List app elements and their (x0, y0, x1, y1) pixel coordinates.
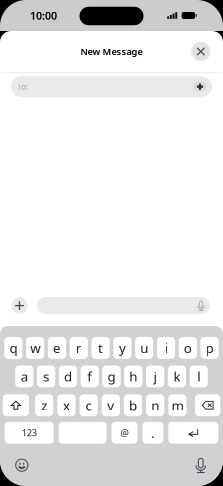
staticText: x (63, 396, 70, 414)
button[interactable]: @ (111, 422, 137, 444)
button[interactable]: Add contact (191, 78, 209, 96)
staticText: d (64, 368, 72, 385)
staticText: t (98, 339, 103, 357)
staticText: u (140, 339, 148, 357)
staticText: a (21, 368, 28, 385)
staticText: n (151, 396, 159, 414)
button[interactable]: j (146, 365, 164, 387)
button[interactable]: Dictation (188, 452, 214, 478)
button[interactable]: i (157, 337, 175, 359)
button[interactable]: . (142, 422, 163, 444)
button[interactable]: o (179, 337, 197, 359)
staticText: c (86, 396, 92, 414)
button[interactable]: 123 (5, 422, 54, 444)
staticText: k (173, 368, 180, 385)
staticText: New Message (80, 45, 142, 58)
staticText: h (129, 368, 137, 385)
staticText: g (107, 368, 115, 385)
button[interactable]: v (102, 394, 120, 416)
staticText: r (76, 339, 82, 357)
button[interactable]: k (168, 365, 186, 387)
staticText: f (87, 368, 92, 385)
button[interactable]: d (59, 365, 77, 387)
staticText: s (43, 368, 49, 385)
button[interactable]: s (37, 365, 55, 387)
staticText: v (107, 396, 114, 414)
button[interactable]: Return (168, 422, 218, 444)
staticText: e (53, 339, 61, 357)
staticText: 123 (22, 427, 37, 439)
button[interactable]: Close (189, 39, 213, 63)
button[interactable]: e (48, 337, 66, 359)
staticText: m (171, 396, 183, 414)
button[interactable]: h (124, 365, 142, 387)
staticText: w (30, 339, 40, 357)
staticText: i (164, 339, 167, 357)
button[interactable]: m (168, 394, 186, 416)
button[interactable]: w (26, 337, 44, 359)
staticText: l (197, 368, 200, 385)
button[interactable]: x (57, 394, 75, 416)
button[interactable]: Add media (8, 297, 31, 314)
button[interactable]: r (70, 337, 88, 359)
button[interactable]: q (4, 337, 22, 359)
button[interactable]: Emoji keyboard (9, 452, 35, 478)
button[interactable]: p (200, 337, 219, 359)
button[interactable]: n (146, 394, 164, 416)
button[interactable]: g (102, 365, 121, 387)
staticText: b (129, 396, 137, 414)
button[interactable]: u (135, 337, 153, 359)
staticText: @ (120, 427, 128, 439)
button[interactable]: z (35, 394, 53, 416)
button[interactable]: l (190, 365, 208, 387)
button[interactable]: Delete (195, 394, 220, 416)
staticText: z (41, 396, 47, 414)
button[interactable]: b (124, 394, 142, 416)
button[interactable]: a (15, 365, 33, 387)
staticText: y (119, 339, 126, 357)
staticText: 10:00 (30, 8, 57, 23)
staticText: q (9, 339, 17, 357)
button[interactable]: space (59, 422, 107, 444)
staticText: o (184, 339, 192, 357)
staticText: . (151, 424, 155, 442)
staticText: To: (17, 81, 28, 92)
button[interactable]: f (81, 365, 99, 387)
button[interactable]: c (79, 394, 98, 416)
staticText: p (206, 339, 214, 357)
button[interactable]: t (91, 337, 110, 359)
button[interactable]: Shift (3, 394, 29, 416)
button[interactable]: y (113, 337, 131, 359)
staticText: j (154, 368, 157, 385)
